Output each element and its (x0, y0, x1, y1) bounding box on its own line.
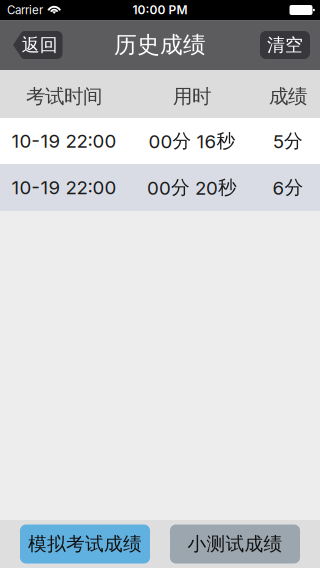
staticText: 5分 (273, 129, 303, 153)
staticText: 小测试成绩 (187, 532, 282, 556)
button[interactable]: 模拟考试成绩 (20, 524, 150, 563)
staticText: 6分 (272, 176, 303, 199)
staticText: 成绩 (269, 84, 307, 109)
staticText: 返回 (22, 34, 58, 56)
staticText: 考试时间 (26, 84, 102, 109)
staticText: 清空 (267, 34, 303, 56)
button[interactable]: 10-19 22:00 (0, 164, 320, 211)
button[interactable]: 返回 (13, 31, 62, 59)
staticText: 10-19 22:00 (11, 130, 116, 152)
staticText: 00分 20秒 (147, 176, 237, 199)
staticText: 10-19 22:00 (11, 176, 116, 199)
staticText: Carrier (7, 3, 43, 17)
button[interactable]: 清空 (260, 31, 310, 59)
staticText: 模拟考试成绩 (28, 532, 142, 556)
button[interactable]: 小测试成绩 (170, 524, 300, 563)
staticText: 用时 (173, 84, 211, 109)
staticText: 历史成绩 (114, 31, 206, 59)
button[interactable]: 10-19 22:00 (0, 118, 320, 164)
staticText: 10:00 PM (132, 3, 187, 17)
staticText: 00分 16秒 (148, 129, 235, 153)
